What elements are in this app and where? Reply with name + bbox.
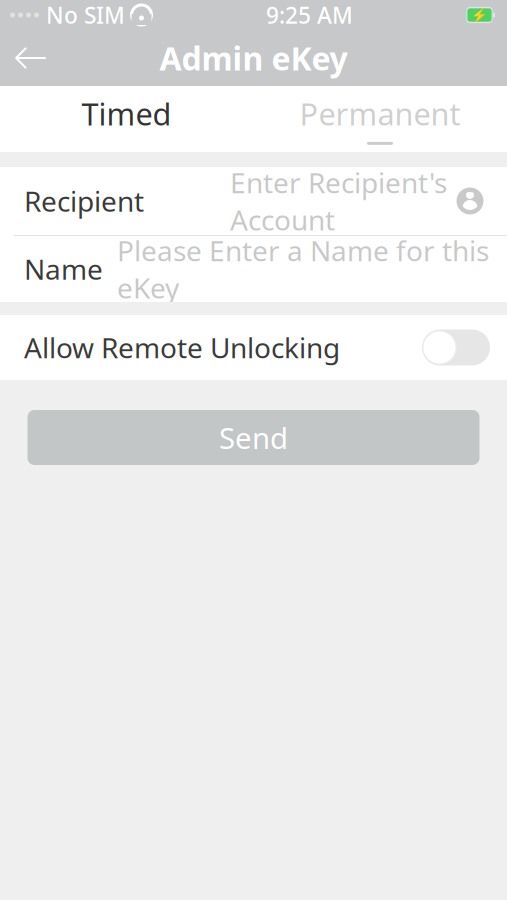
staticText: Permanent (299, 93, 460, 134)
button[interactable]: Allow Remote Unlocking (0, 315, 507, 380)
staticText: Allow Remote Unlocking (24, 329, 340, 366)
staticText: Send (219, 418, 288, 457)
staticText: 9:25 AM (266, 0, 353, 30)
button[interactable]: Timed (0, 86, 253, 152)
staticText: Please Enter a Name for this eKey (117, 232, 489, 306)
staticText: Name (24, 250, 103, 288)
button[interactable]: Send (27, 410, 479, 465)
staticText: Admin eKey (159, 37, 347, 79)
staticText: Timed (81, 93, 171, 134)
button[interactable]: Permanent (253, 86, 507, 152)
staticText: No SIM (46, 0, 125, 30)
staticText: ⚡ (471, 7, 488, 23)
button[interactable]: Choose contact (447, 178, 493, 224)
button[interactable]: Back (0, 30, 62, 86)
staticText: Recipient (24, 182, 144, 220)
staticText: Enter Recipient's Account (230, 164, 447, 238)
